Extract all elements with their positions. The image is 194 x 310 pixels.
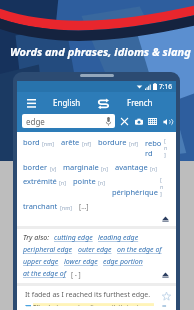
staticText: [n] (160, 176, 164, 197)
button[interactable]: extrémité (23, 176, 73, 186)
staticText: [nm] (60, 204, 73, 211)
staticText: edge (26, 116, 106, 127)
button[interactable]: tranchant (23, 201, 79, 211)
button[interactable]: Swap languages (95, 95, 111, 111)
staticText: edge portion (103, 257, 143, 267)
button[interactable]: Keyboard (147, 116, 158, 127)
button[interactable]: at the edge of (23, 268, 71, 280)
staticText: [n] (101, 165, 109, 172)
button[interactable]: edge portion (103, 256, 148, 268)
button[interactable]: bord (23, 137, 61, 147)
staticText: [nf] (82, 140, 92, 147)
button[interactable]: leading edge (98, 232, 144, 244)
staticText: upper edge (23, 257, 59, 267)
staticText: bord (23, 137, 40, 147)
staticText: [...] (79, 202, 89, 211)
button[interactable]: lower edge (64, 256, 103, 268)
button[interactable]: Pronounce (161, 116, 172, 127)
button[interactable]: Collapse (160, 213, 170, 223)
staticText: peripheral edge (23, 245, 73, 255)
staticText: arête (61, 137, 80, 147)
staticText: lower edge (64, 257, 98, 267)
button[interactable]: Clear (119, 116, 130, 127)
staticText: [v] (50, 165, 57, 172)
staticText: outer edge (78, 245, 112, 255)
staticText: French (127, 97, 153, 108)
staticText: border (23, 162, 48, 172)
staticText: marginale (63, 162, 99, 172)
staticText: Try also: (23, 233, 50, 243)
button[interactable]: on the edge of (117, 244, 167, 256)
staticText: [ - ] (71, 270, 81, 279)
button[interactable]: avantage (115, 162, 164, 172)
button[interactable]: arête (61, 137, 98, 147)
button[interactable]: bordure (98, 137, 145, 147)
button[interactable]: périphérique (112, 176, 170, 197)
button[interactable]: Favourite (160, 290, 172, 302)
staticText: on the edge of (117, 245, 162, 255)
button[interactable]: outer edge (78, 244, 117, 256)
button[interactable]: upper edge (23, 256, 64, 268)
button[interactable]: It faded as I reached its furthest edge. (17, 286, 176, 310)
staticText: Words and phrases, idioms & slang (10, 44, 191, 59)
staticText: leading edge (98, 233, 139, 243)
button[interactable]: French (111, 97, 169, 108)
staticText: bordure (98, 137, 127, 147)
staticText: It faded as I reached its furthest edge. (25, 290, 151, 300)
button[interactable]: border (23, 162, 63, 172)
staticText: English (53, 97, 81, 108)
staticText: périphérique (112, 187, 158, 197)
staticText: rebord (145, 138, 164, 158)
button[interactable]: marginale (63, 162, 115, 172)
button[interactable]: peripheral edge (23, 244, 78, 256)
staticText: [nf] (129, 140, 139, 147)
button[interactable]: Menu (24, 96, 38, 110)
staticText: pointe (73, 176, 96, 186)
button[interactable]: cutting edge (54, 232, 98, 244)
staticText: [nm] (42, 140, 55, 147)
staticText: [n] (98, 179, 106, 186)
staticText: Elle s'estompa tandis que j'atteignis so… (33, 303, 160, 306)
button[interactable]: Collapse (160, 269, 170, 279)
staticText: cutting edge (54, 233, 93, 243)
staticText: [n] (59, 179, 67, 186)
button[interactable]: rebord (145, 137, 170, 158)
staticText: 7:16 (159, 82, 172, 91)
staticText: [n] (150, 165, 158, 172)
staticText: tranchant (23, 201, 58, 211)
staticText: extrémité (23, 176, 57, 186)
button[interactable]: Camera (133, 116, 144, 127)
button[interactable]: English (38, 97, 95, 108)
staticText: at the edge of (23, 269, 66, 279)
button[interactable]: pointe (73, 176, 112, 186)
staticText: avantage (115, 162, 148, 172)
button[interactable]: edge (22, 114, 115, 128)
